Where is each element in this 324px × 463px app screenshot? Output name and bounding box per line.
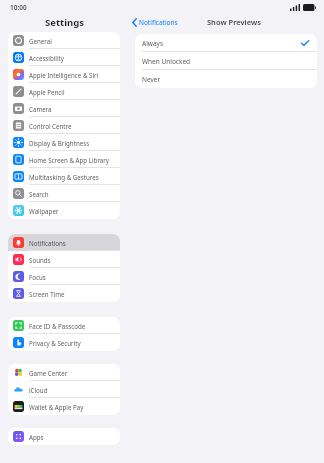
staticText: Privacy & Security bbox=[29, 339, 81, 347]
staticText: Multitasking & Gestures bbox=[29, 173, 99, 181]
button[interactable]: Apple Intelligence & Siri bbox=[8, 66, 120, 83]
button[interactable]: Privacy & Security bbox=[8, 334, 120, 351]
staticText: Wallpaper bbox=[29, 207, 59, 215]
staticText: Notifications bbox=[139, 18, 178, 27]
button[interactable]: Game Center bbox=[8, 364, 120, 381]
button[interactable]: Notifications bbox=[132, 18, 178, 27]
staticText: Show Previews bbox=[207, 17, 261, 27]
button[interactable]: Wallpaper bbox=[8, 202, 120, 219]
button[interactable]: Apple Pencil bbox=[8, 83, 120, 100]
staticText: When Unlocked bbox=[142, 57, 191, 66]
button[interactable]: Camera bbox=[8, 100, 120, 117]
button[interactable]: Screen Time bbox=[8, 285, 120, 302]
button[interactable]: Never bbox=[135, 70, 317, 88]
button[interactable]: When Unlocked bbox=[135, 52, 317, 70]
staticText: Search bbox=[29, 190, 49, 198]
button[interactable]: Wallet & Apple Pay bbox=[8, 398, 120, 415]
button[interactable]: Multitasking & Gestures bbox=[8, 168, 120, 185]
staticText: Always bbox=[142, 39, 164, 48]
staticText: 10:00 bbox=[10, 3, 27, 12]
button[interactable]: iCloud bbox=[8, 381, 120, 398]
button[interactable]: Control Centre bbox=[8, 117, 120, 134]
staticText: Focus bbox=[29, 273, 46, 281]
button[interactable]: Search bbox=[8, 185, 120, 202]
staticText: Settings bbox=[45, 16, 84, 29]
button[interactable]: Sounds bbox=[8, 251, 120, 268]
staticText: iCloud bbox=[29, 386, 48, 394]
staticText: Never bbox=[142, 75, 161, 84]
other: Selected bbox=[301, 40, 309, 46]
staticText: Accessibility bbox=[29, 54, 64, 62]
button[interactable]: Face ID & Passcode bbox=[8, 317, 120, 334]
staticText: Wallet & Apple Pay bbox=[29, 403, 84, 411]
button[interactable]: General bbox=[8, 32, 120, 49]
button[interactable]: Apps bbox=[8, 428, 120, 445]
staticText: Sounds bbox=[29, 256, 51, 264]
button[interactable]: Accessibility bbox=[8, 49, 120, 66]
button[interactable]: Display & Brightness bbox=[8, 134, 120, 151]
button[interactable]: Focus bbox=[8, 268, 120, 285]
button[interactable]: Notifications bbox=[8, 234, 120, 251]
staticText: General bbox=[29, 37, 52, 45]
staticText: Apple Pencil bbox=[29, 88, 65, 96]
staticText: Screen Time bbox=[29, 290, 65, 298]
staticText: Apple Intelligence & Siri bbox=[29, 71, 99, 79]
staticText: Home Screen & App Library bbox=[29, 156, 109, 164]
staticText: Display & Brightness bbox=[29, 139, 90, 147]
button[interactable]: Home Screen & App Library bbox=[8, 151, 120, 168]
staticText: Face ID & Passcode bbox=[29, 322, 86, 330]
staticText: Notifications bbox=[29, 239, 66, 247]
staticText: Camera bbox=[29, 105, 52, 113]
staticText: Control Centre bbox=[29, 122, 72, 130]
staticText: Apps bbox=[29, 433, 44, 441]
staticText: Game Center bbox=[29, 369, 68, 377]
button[interactable]: Always bbox=[135, 34, 317, 52]
